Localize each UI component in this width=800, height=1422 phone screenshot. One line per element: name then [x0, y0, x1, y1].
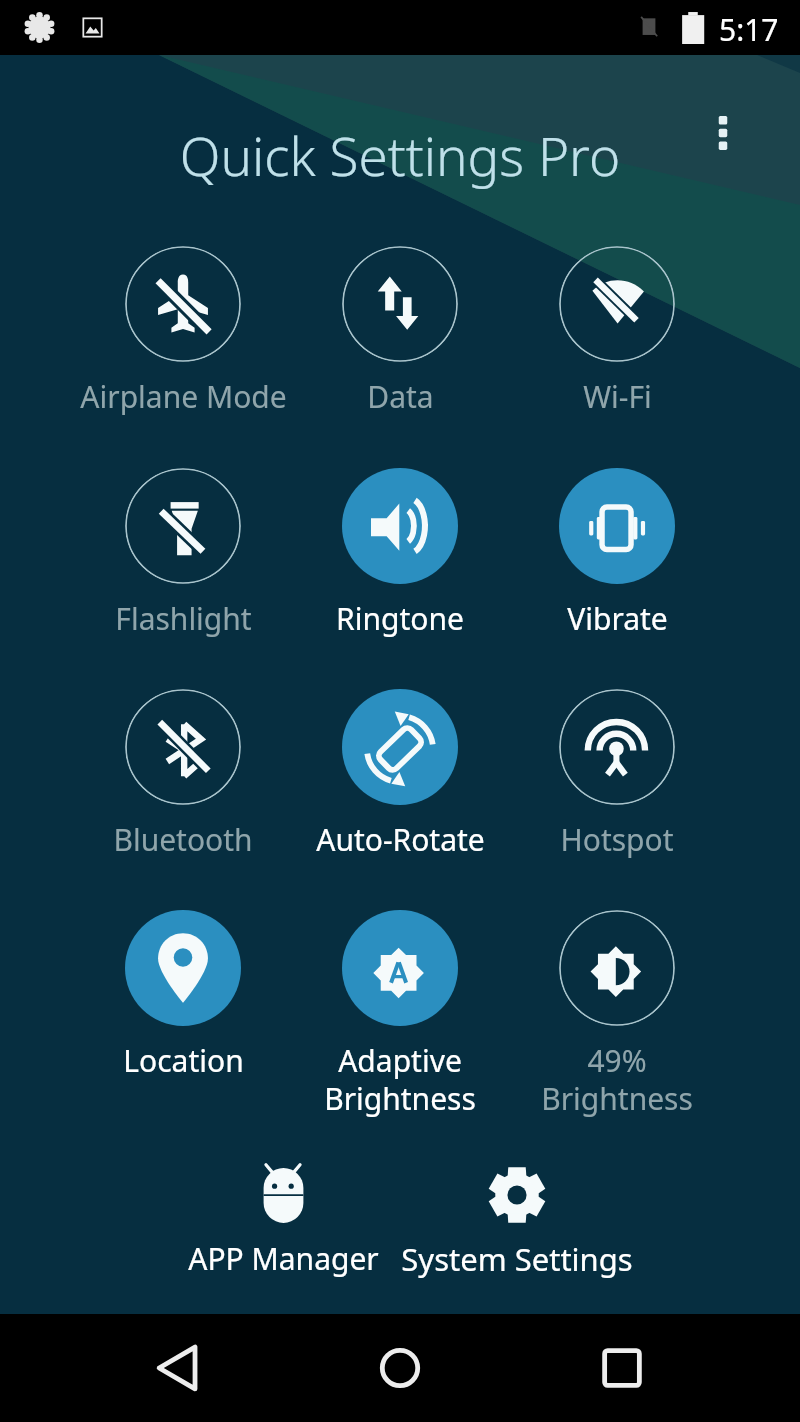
button[interactable]: Wi-Fi [507, 246, 727, 417]
staticText: System Settings [401, 1238, 633, 1280]
staticText: Flashlight [115, 598, 252, 639]
button[interactable]: Hotspot [507, 689, 727, 860]
staticText: Auto-Rotate [316, 819, 485, 860]
button[interactable]: Vibrate [507, 468, 727, 639]
staticText: Wi-Fi [583, 376, 652, 417]
button[interactable]: APP Manager [143, 1154, 423, 1289]
button[interactable]: Recents [584, 1330, 660, 1406]
staticText: Location [123, 1040, 244, 1081]
button[interactable]: Adaptive Brightness [290, 910, 510, 1119]
staticText: Quick Settings Pro [0, 119, 800, 191]
staticText: 49% Brightness [541, 1040, 693, 1119]
button[interactable]: Back [140, 1330, 216, 1406]
button[interactable]: Data [290, 246, 510, 417]
button[interactable]: Location [73, 910, 293, 1081]
button[interactable]: System Settings [377, 1158, 657, 1290]
button[interactable]: Bluetooth [73, 689, 293, 860]
staticText: Ringtone [336, 598, 464, 639]
staticText: 5:17 [719, 9, 779, 50]
button[interactable]: Flashlight [73, 468, 293, 639]
button[interactable]: Brightness [507, 910, 727, 1119]
staticText: Adaptive Brightness [324, 1040, 476, 1119]
staticText: Data [367, 376, 434, 417]
staticText: APP Manager [188, 1238, 379, 1279]
button[interactable]: Airplane Mode [73, 246, 293, 417]
staticText: Hotspot [560, 819, 674, 860]
staticText: Airplane Mode [80, 376, 287, 417]
button[interactable]: Auto-Rotate [290, 689, 510, 860]
staticText: Vibrate [567, 598, 668, 639]
button[interactable]: Home [362, 1330, 438, 1406]
button[interactable]: Ringtone [290, 468, 510, 639]
button[interactable]: More options [693, 103, 753, 163]
staticText: Bluetooth [113, 819, 253, 860]
